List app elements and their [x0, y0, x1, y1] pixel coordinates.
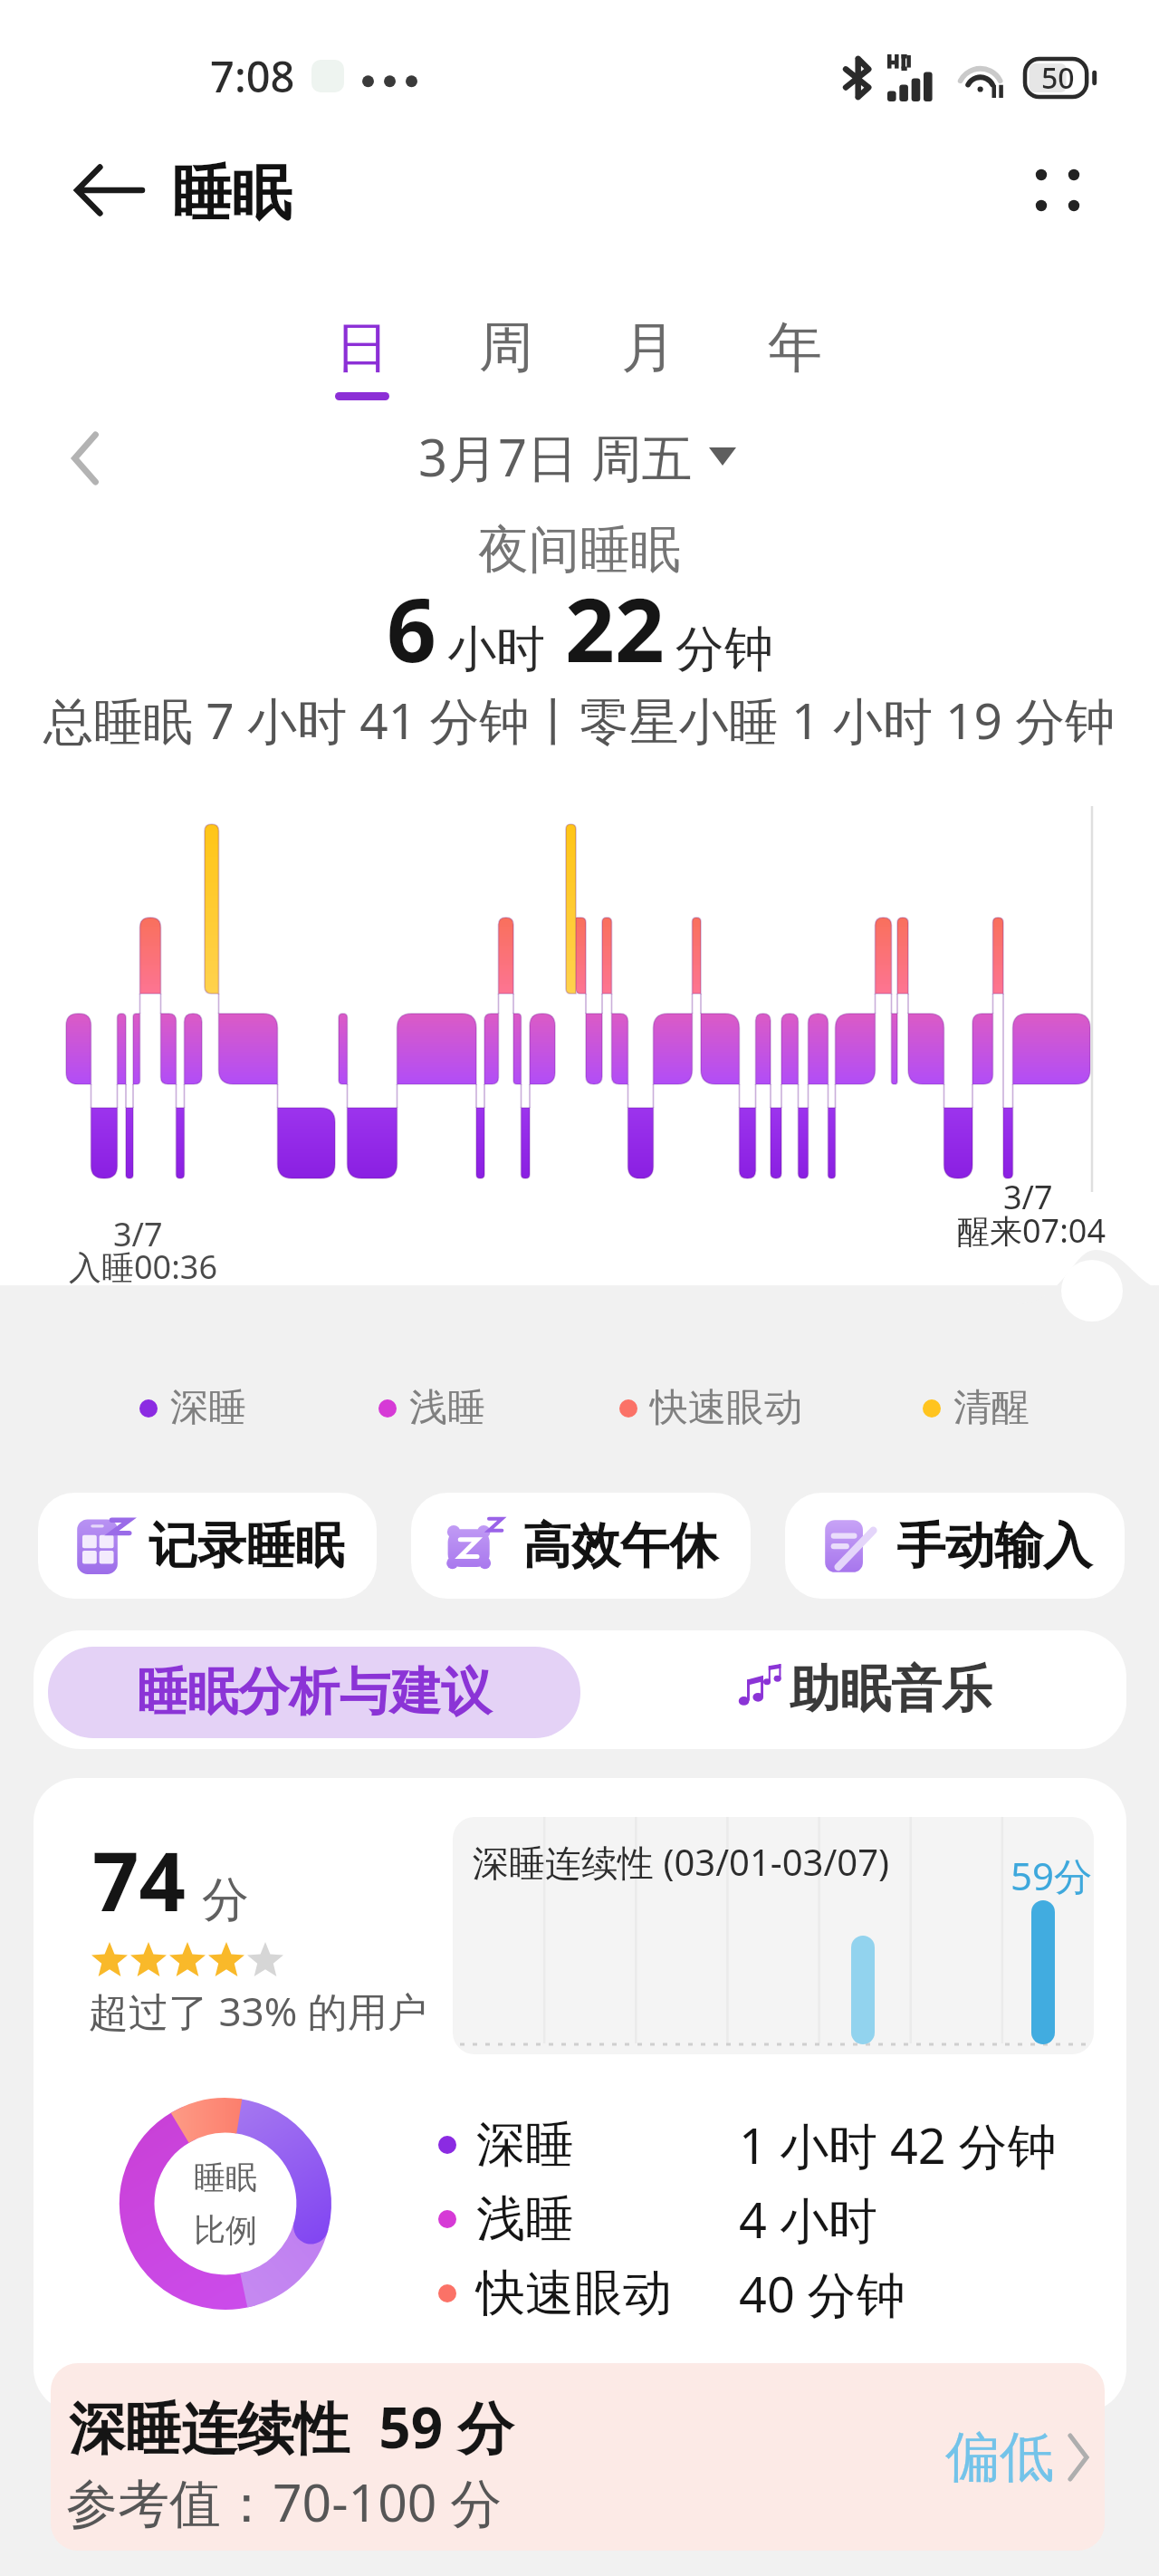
button[interactable]: 3月7日 周五	[418, 422, 736, 491]
staticText: 快速眼动	[476, 2263, 672, 2324]
staticText: 59分	[1011, 1850, 1093, 1901]
staticText: 22	[565, 569, 665, 687]
staticText: 睡眠	[172, 156, 292, 231]
button[interactable]: 高效午休	[411, 1493, 751, 1599]
staticText: 浅睡	[476, 2188, 574, 2250]
staticText: 7:08	[210, 47, 295, 105]
staticText: 夜间睡眠	[478, 518, 681, 582]
button[interactable]: Expand chart	[1061, 1260, 1123, 1322]
staticText: 比例	[194, 2210, 257, 2250]
button[interactable]: More options	[1018, 150, 1097, 230]
staticText: 总睡眠 7 小时 41 分钟丨零星小睡 1 小时 19 分钟	[43, 686, 1116, 754]
button[interactable]: 月	[590, 313, 706, 408]
staticText: 记录睡眠	[148, 1515, 344, 1577]
staticText: 浅睡	[409, 1384, 485, 1432]
staticText: 睡眠	[194, 2158, 257, 2197]
staticText: 助眠音乐	[790, 1658, 992, 1722]
staticText: 小时	[447, 619, 545, 680]
staticText: 深睡连续性 59 分	[69, 2389, 514, 2465]
button[interactable]: 记录睡眠	[38, 1493, 377, 1599]
button[interactable]: 日	[304, 313, 420, 408]
staticText: 50	[1041, 58, 1075, 98]
staticText: 40 分钟	[739, 2260, 905, 2327]
staticText: 深睡	[170, 1384, 246, 1432]
staticText: 分	[202, 1870, 249, 1930]
staticText: 清醒	[953, 1384, 1030, 1432]
button[interactable]: 手动输入	[785, 1493, 1125, 1599]
staticText: 月	[621, 313, 675, 382]
button[interactable]: 睡眠分析与建议	[48, 1647, 580, 1738]
staticText: 3/7	[113, 1212, 163, 1256]
staticText: 偏低	[945, 2423, 1054, 2492]
staticText: 参考值：70-100 分	[66, 2466, 503, 2537]
staticText: 6	[387, 569, 436, 687]
button[interactable]: Back	[67, 152, 150, 228]
staticText: 3/7	[1003, 1175, 1053, 1219]
staticText: 1 小时 42 分钟	[739, 2111, 1057, 2178]
staticText: 醒来07:04	[957, 1208, 1106, 1253]
staticText: 分钟	[675, 619, 773, 680]
staticText: 手动输入	[896, 1515, 1092, 1577]
button[interactable]: Previous day	[51, 418, 120, 498]
staticText: 深睡	[476, 2114, 574, 2176]
staticText: 年	[768, 313, 822, 382]
button[interactable]: 深睡连续性 59 分	[51, 2363, 1105, 2551]
staticText: 入睡00:36	[69, 1245, 218, 1289]
staticText: 快速眼动	[650, 1384, 802, 1432]
staticText: 74	[92, 1824, 186, 1936]
staticText: 周	[479, 313, 533, 382]
button[interactable]: 周	[448, 313, 564, 408]
staticText: 超过了 33% 的用户	[89, 1984, 427, 2038]
staticText: 日	[335, 313, 389, 382]
staticText: 3月7日 周五	[418, 422, 693, 491]
button[interactable]: 年	[737, 313, 853, 408]
staticText: 睡眠分析与建议	[137, 1660, 492, 1725]
staticText: 4 小时	[739, 2186, 877, 2253]
staticText: 高效午休	[522, 1515, 718, 1577]
staticText: 深睡连续性 (03/01-03/07)	[473, 1837, 890, 1887]
button[interactable]: 助眠音乐	[620, 1630, 1109, 1749]
